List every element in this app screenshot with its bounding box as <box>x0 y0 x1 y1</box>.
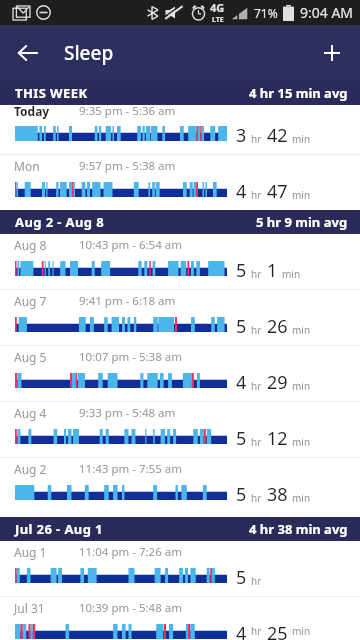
staticText: min <box>292 323 311 337</box>
staticText: 10:43 pm - 6:54 am <box>79 237 182 253</box>
staticText: Aug 5 <box>14 349 47 365</box>
staticText: 9:57 pm - 5:38 am <box>79 158 176 174</box>
button[interactable]: Jul 31 <box>0 596 360 640</box>
staticText: Jul 26 - Aug 1 <box>15 520 103 538</box>
staticText: min <box>292 188 311 202</box>
staticText: Aug 7 <box>14 293 47 309</box>
staticText: Jul 31 <box>14 600 45 616</box>
button[interactable]: THIS WEEK <box>0 81 360 105</box>
button[interactable]: Mon <box>0 154 360 210</box>
button[interactable]: Add <box>312 33 352 73</box>
staticText: 1 <box>267 258 278 283</box>
staticText: 3 <box>236 123 247 148</box>
staticText: 26 <box>267 314 288 339</box>
staticText: 5 hr 9 min avg <box>256 213 348 231</box>
staticText: min <box>292 132 311 146</box>
staticText: hr <box>251 188 262 202</box>
staticText: Aug 8 <box>14 237 47 253</box>
staticText: 47 <box>267 179 288 204</box>
staticText: 5 <box>236 258 247 283</box>
button[interactable]: Aug 1 <box>0 541 360 596</box>
staticText: min <box>282 267 301 281</box>
staticText: 11:04 pm - 7:26 am <box>79 544 182 560</box>
staticText: 12 <box>267 426 288 451</box>
staticText: hr <box>251 435 262 449</box>
button[interactable]: Back <box>8 33 48 73</box>
staticText: hr <box>251 574 262 588</box>
staticText: 29 <box>267 370 288 395</box>
staticText: min <box>292 491 311 505</box>
staticText: 10:39 pm - 5:48 am <box>79 600 182 616</box>
staticText: 42 <box>267 123 288 148</box>
staticText: LTE <box>212 15 224 25</box>
staticText: 71% <box>254 5 278 21</box>
staticText: 9:04 AM <box>300 3 354 22</box>
staticText: hr <box>251 379 262 393</box>
staticText: Today <box>14 103 50 119</box>
staticText: min <box>292 379 311 393</box>
button[interactable]: Today <box>0 105 360 154</box>
button[interactable]: Aug 5 <box>0 345 360 401</box>
staticText: 4 <box>236 179 247 204</box>
staticText: 38 <box>267 482 288 507</box>
staticText: 4 hr 15 min avg <box>249 84 348 102</box>
staticText: 5 <box>236 314 247 339</box>
staticText: Aug 1 <box>14 544 47 560</box>
staticText: 11:43 pm - 7:55 am <box>79 461 182 477</box>
staticText: 4 <box>236 370 247 395</box>
button[interactable]: Aug 2 <box>0 457 360 517</box>
staticText: 5 <box>236 482 247 507</box>
staticText: hr <box>251 132 262 146</box>
staticText: 4 hr 38 min avg <box>249 520 348 538</box>
staticText: 5 <box>236 426 247 451</box>
staticText: hr <box>251 323 262 337</box>
staticText: 10:07 pm - 5:38 am <box>79 349 182 365</box>
staticText: min <box>292 435 311 449</box>
button[interactable]: Aug 8 <box>0 234 360 289</box>
staticText: hr <box>251 491 262 505</box>
staticText: 9:33 pm - 5:48 am <box>79 405 176 421</box>
staticText: 4G <box>210 0 225 15</box>
button[interactable]: Aug 2 - Aug 8 <box>0 210 360 234</box>
staticText: hr <box>251 624 262 638</box>
staticText: 25 <box>267 621 288 640</box>
staticText: Aug 2 <box>14 461 47 477</box>
staticText: THIS WEEK <box>15 84 88 102</box>
staticText: 4 <box>236 621 247 640</box>
button[interactable]: Aug 7 <box>0 289 360 345</box>
staticText: Aug 4 <box>14 405 47 421</box>
staticText: 9:35 pm - 5:36 am <box>79 103 176 119</box>
staticText: Sleep <box>64 40 114 66</box>
button[interactable]: Jul 26 - Aug 1 <box>0 517 360 541</box>
button[interactable]: Aug 4 <box>0 401 360 457</box>
staticText: Aug 2 - Aug 8 <box>15 213 105 231</box>
staticText: 9:41 pm - 6:18 am <box>79 293 176 309</box>
staticText: hr <box>251 267 262 281</box>
staticText: Mon <box>14 158 40 174</box>
staticText: min <box>292 624 311 638</box>
staticText: 5 <box>236 565 247 590</box>
